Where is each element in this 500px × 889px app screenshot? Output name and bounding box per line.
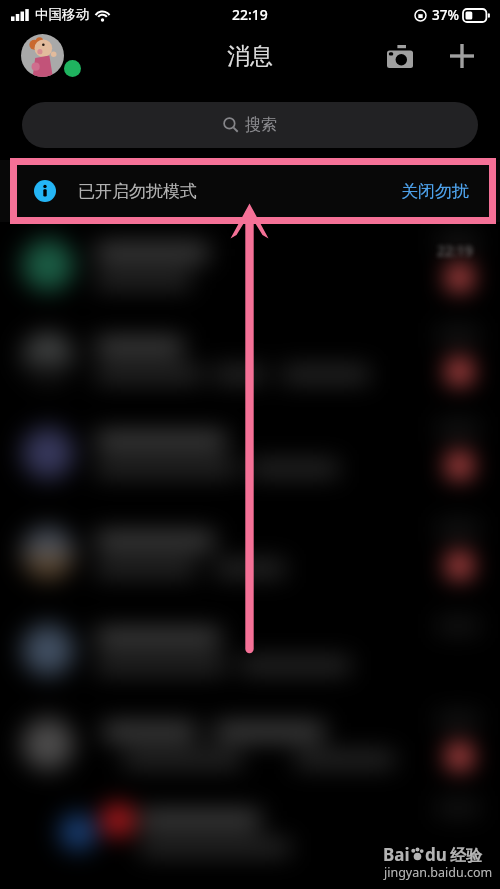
button[interactable]: Camera: [382, 38, 418, 74]
staticText: 2: [455, 556, 464, 575]
button[interactable]: 已开启勿扰模式: [0, 160, 500, 222]
staticText: 2: [455, 747, 464, 766]
button[interactable]: [0, 786, 500, 878]
button[interactable]: 搜索: [22, 102, 478, 148]
staticText: 22:19: [232, 5, 268, 24]
staticText: 2: [455, 268, 464, 287]
staticText: 消息: [227, 42, 273, 71]
button[interactable]: 2: [0, 507, 500, 599]
staticText: 经验: [450, 846, 482, 866]
staticText: 搜索: [245, 115, 277, 135]
staticText: jingyan.baidu.com: [384, 864, 493, 881]
staticText: 22:19: [437, 241, 473, 260]
staticText: 已开启勿扰模式: [78, 181, 197, 202]
staticText: 2: [455, 456, 464, 475]
staticText: du: [425, 843, 447, 866]
button[interactable]: 2: [0, 407, 500, 499]
button[interactable]: 2: [0, 313, 500, 405]
staticText: 2: [455, 362, 464, 381]
staticText: Bai: [383, 843, 410, 866]
staticText: 37%: [432, 6, 459, 24]
button[interactable]: [0, 604, 500, 696]
button[interactable]: 2: [0, 698, 500, 790]
button[interactable]: 2: [0, 219, 500, 311]
button[interactable]: Profile: [21, 34, 64, 77]
button[interactable]: 关闭勿扰: [401, 181, 469, 202]
button[interactable]: Add: [444, 38, 480, 74]
staticText: 中国移动: [35, 6, 89, 23]
